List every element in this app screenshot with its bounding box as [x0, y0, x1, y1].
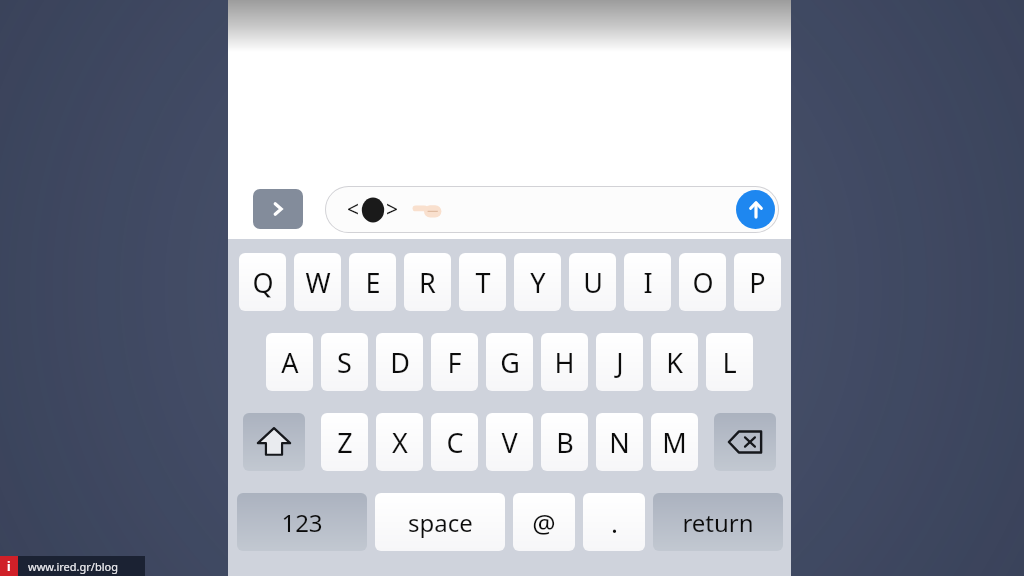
- button[interactable]: G: [486, 333, 533, 391]
- staticText: @: [532, 505, 556, 540]
- staticText: X: [392, 424, 408, 461]
- staticText: T: [475, 264, 491, 301]
- staticText: space: [408, 506, 473, 539]
- staticText: P: [749, 264, 766, 301]
- staticText: B: [556, 424, 574, 461]
- staticText: V: [501, 424, 518, 461]
- button[interactable]: F: [431, 333, 478, 391]
- staticText: F: [447, 344, 462, 381]
- staticText: Q: [252, 264, 274, 301]
- staticText: M: [662, 424, 687, 461]
- button[interactable]: D: [376, 333, 423, 391]
- button[interactable]: S: [321, 333, 368, 391]
- button[interactable]: V: [486, 413, 533, 471]
- button[interactable]: U: [569, 253, 616, 311]
- staticText: S: [337, 344, 352, 381]
- staticText: E: [365, 264, 381, 301]
- button[interactable]: Z: [321, 413, 368, 471]
- staticText: O: [692, 264, 714, 301]
- button[interactable]: J: [596, 333, 643, 391]
- button[interactable]: 123: [237, 493, 367, 551]
- button[interactable]: Send: [736, 190, 775, 229]
- staticText: D: [390, 344, 410, 381]
- button[interactable]: R: [404, 253, 451, 311]
- button[interactable]: M: [651, 413, 698, 471]
- staticText: R: [419, 264, 436, 301]
- staticText: www.ired.gr/blog: [28, 559, 118, 574]
- staticText: N: [609, 424, 630, 461]
- staticText: L: [722, 344, 737, 381]
- button[interactable]: <: [325, 186, 779, 233]
- staticText: U: [583, 264, 603, 301]
- button[interactable]: B: [541, 413, 588, 471]
- button[interactable]: Y: [514, 253, 561, 311]
- staticText: A: [281, 344, 299, 381]
- button[interactable]: @: [513, 493, 575, 551]
- button[interactable]: X: [376, 413, 423, 471]
- button[interactable]: K: [651, 333, 698, 391]
- button[interactable]: T: [459, 253, 506, 311]
- button[interactable]: A: [266, 333, 313, 391]
- button[interactable]: I: [624, 253, 671, 311]
- staticText: 123: [281, 506, 323, 539]
- staticText: J: [616, 344, 624, 381]
- button[interactable]: N: [596, 413, 643, 471]
- button[interactable]: C: [431, 413, 478, 471]
- button[interactable]: Expand: [253, 189, 303, 229]
- staticText: i: [7, 558, 11, 574]
- staticText: H: [554, 344, 575, 381]
- staticText: >: [386, 195, 399, 224]
- button[interactable]: Shift: [243, 413, 305, 471]
- button[interactable]: Backspace: [714, 413, 776, 471]
- button[interactable]: Q: [239, 253, 286, 311]
- button[interactable]: P: [734, 253, 781, 311]
- staticText: Y: [530, 264, 546, 301]
- staticText: I: [643, 264, 653, 301]
- button[interactable]: space: [375, 493, 505, 551]
- staticText: <: [347, 195, 360, 224]
- staticText: Z: [337, 424, 353, 461]
- button[interactable]: .: [583, 493, 645, 551]
- staticText: W: [305, 264, 331, 301]
- staticText: .: [611, 505, 618, 540]
- staticText: return: [682, 506, 754, 539]
- button[interactable]: W: [294, 253, 341, 311]
- button[interactable]: E: [349, 253, 396, 311]
- button[interactable]: H: [541, 333, 588, 391]
- button[interactable]: L: [706, 333, 753, 391]
- button[interactable]: return: [653, 493, 783, 551]
- button[interactable]: O: [679, 253, 726, 311]
- staticText: G: [500, 344, 520, 381]
- staticText: K: [666, 344, 683, 381]
- staticText: C: [446, 424, 464, 461]
